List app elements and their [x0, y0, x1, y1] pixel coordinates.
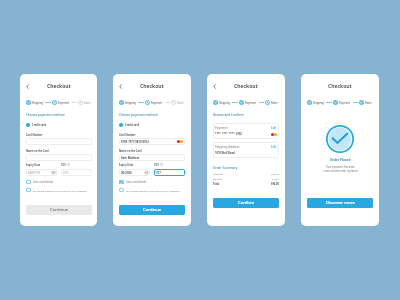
staticText: Name on the Card	[119, 149, 142, 152]
staticText: Your payment has been received and order…	[323, 165, 358, 173]
staticText: My billing address is the same as my shi…	[126, 189, 185, 192]
button[interactable]: Discover more	[307, 198, 373, 208]
staticText: Name on the Card	[26, 149, 49, 152]
staticText: Expiry Date	[119, 163, 134, 166]
staticText: Expiry Date	[26, 163, 41, 166]
staticText: Review and Confirm	[213, 113, 244, 117]
staticText: 06/2026	[121, 171, 132, 175]
staticText: Review	[365, 101, 373, 105]
staticText: Continue	[50, 207, 69, 213]
staticText: Card Number	[26, 133, 43, 136]
staticText: Sam Mathew	[121, 156, 140, 160]
staticText: Choose payment method	[119, 113, 158, 117]
staticText: Checkout	[328, 83, 352, 90]
staticText: My billing address is the same as my shi…	[33, 189, 92, 192]
staticText: CVV	[154, 163, 159, 166]
staticText: $90.00	[271, 172, 279, 175]
staticText: Shipping	[32, 101, 43, 105]
button[interactable]: 5785 7577 0810 0762	[119, 138, 185, 145]
staticText: Confirm	[238, 200, 255, 206]
staticText: Discover more	[326, 200, 355, 206]
staticText: Delivery	[213, 177, 223, 180]
staticText: $96.00	[271, 182, 279, 185]
staticText: Checkout	[47, 83, 71, 90]
button[interactable]: Shipping Address	[213, 142, 279, 158]
staticText: Review	[177, 101, 185, 105]
button[interactable]: Back	[211, 83, 218, 90]
button[interactable]: Continue	[26, 205, 92, 215]
staticText: Payment	[215, 126, 228, 130]
button[interactable]: Continue	[119, 205, 185, 215]
staticText: Credit card	[32, 123, 47, 127]
button[interactable]	[26, 138, 92, 145]
button[interactable]: 06/2026	[119, 169, 150, 176]
staticText: CVV	[61, 163, 66, 166]
button[interactable]: Confirm	[213, 198, 279, 208]
staticText: Checkout	[140, 83, 164, 90]
staticText: CVV	[63, 171, 69, 175]
staticText: 1010 Wolf Road	[215, 151, 235, 155]
button[interactable]: My billing address is the same as my shi…	[119, 188, 185, 192]
button[interactable]: Payment	[213, 123, 279, 139]
button[interactable]: Back	[117, 83, 124, 90]
staticText: Edit	[271, 126, 277, 130]
staticText: Review	[271, 101, 279, 105]
staticText: Save card details	[33, 180, 54, 184]
staticText: Shipping Address	[215, 145, 240, 149]
button[interactable]	[26, 154, 92, 161]
staticText: Payment	[151, 101, 163, 105]
staticText: $6.00	[272, 177, 279, 180]
staticText: Shipping	[313, 101, 324, 105]
staticText: Total	[213, 182, 220, 185]
staticText: 5785 7577 0810 0762	[121, 140, 149, 144]
button[interactable]: My billing address is the same as my shi…	[26, 188, 92, 192]
staticText: Checkout	[234, 83, 258, 90]
button[interactable]: 377	[154, 169, 185, 176]
staticText: Credit card	[125, 123, 140, 127]
staticText: Save card details	[126, 180, 147, 184]
staticText: MM/YYYY	[28, 171, 41, 175]
button[interactable]: Save card details	[119, 180, 185, 184]
staticText: Edit	[271, 145, 277, 149]
staticText: Review	[84, 101, 92, 105]
button[interactable]: Back	[24, 83, 31, 90]
staticText: **** **** **** 0762	[215, 132, 242, 136]
staticText: Order Summary	[213, 166, 238, 170]
staticText: Payment	[339, 101, 351, 105]
staticText: Choose payment method	[26, 113, 65, 117]
button[interactable]: Save card details	[26, 180, 92, 184]
button[interactable]: Credit card	[119, 123, 140, 127]
button[interactable]: Credit card	[26, 123, 47, 127]
staticText: Order Placed	[330, 158, 351, 162]
staticText: 377	[156, 171, 161, 175]
staticText: Subtotal	[213, 172, 223, 175]
button[interactable]: MM/YYYY	[26, 169, 57, 176]
staticText: Shipping	[125, 101, 136, 105]
button[interactable]: Sam Mathew	[119, 154, 185, 161]
staticText: Card Number	[119, 133, 136, 136]
staticText: Continue	[143, 207, 162, 213]
staticText: Shipping	[219, 101, 230, 105]
staticText: Payment	[245, 101, 257, 105]
staticText: Payment	[58, 101, 70, 105]
button[interactable]: CVV	[61, 169, 92, 176]
